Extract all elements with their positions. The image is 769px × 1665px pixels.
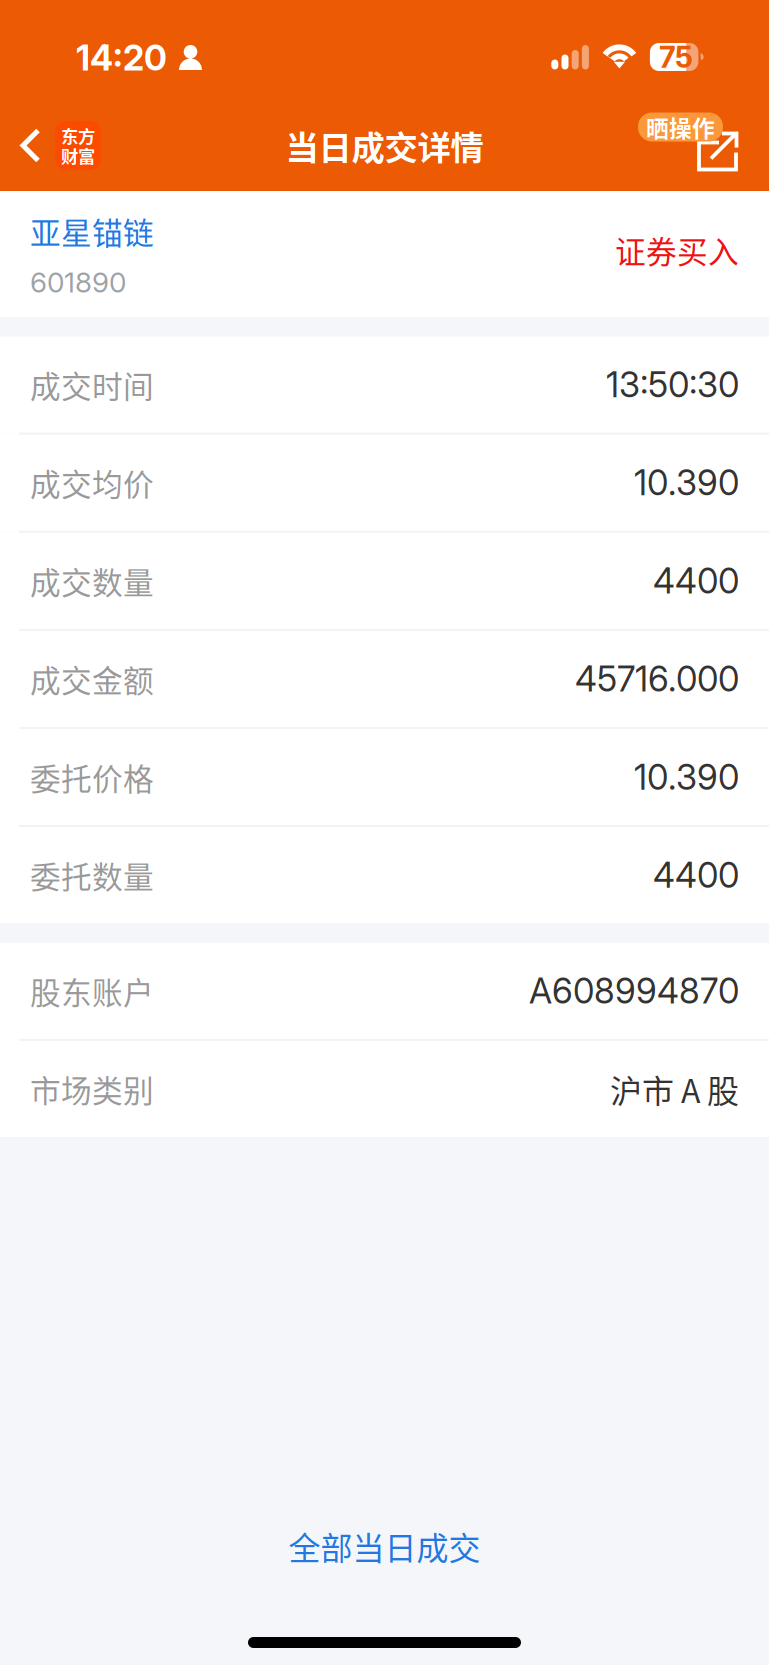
button[interactable]: 亚星锚链 bbox=[0, 191, 769, 317]
staticText: 4400 bbox=[653, 854, 739, 896]
staticText: A608994870 bbox=[529, 970, 739, 1012]
staticText: 4400 bbox=[653, 560, 739, 602]
staticText: 财富 bbox=[61, 143, 95, 168]
staticText: 亚星锚链 bbox=[30, 209, 154, 253]
staticText: 委托价格 bbox=[30, 755, 154, 799]
staticText: 成交时间 bbox=[30, 362, 154, 407]
staticText: 成交金额 bbox=[30, 657, 154, 701]
button[interactable]: Share bbox=[638, 110, 769, 180]
button[interactable]: Back bbox=[0, 99, 113, 191]
staticText: 601890 bbox=[30, 265, 126, 299]
staticText: 证券买入 bbox=[615, 228, 739, 272]
staticText: 14:20 bbox=[76, 37, 167, 79]
staticText: 10.390 bbox=[634, 462, 739, 504]
staticText: 10.390 bbox=[634, 756, 739, 798]
staticText: 成交均价 bbox=[30, 460, 154, 505]
staticText: 晒操作 bbox=[646, 111, 715, 143]
staticText: 45716.000 bbox=[575, 658, 739, 700]
staticText: 市场类别 bbox=[30, 1067, 154, 1111]
staticText: 成交数量 bbox=[30, 559, 154, 603]
button[interactable]: 全部当日成交 bbox=[0, 1510, 769, 1582]
staticText: 股东账户 bbox=[30, 969, 154, 1013]
staticText: 东方 bbox=[61, 123, 95, 148]
staticText: 全部当日成交 bbox=[288, 1523, 480, 1569]
staticText: 当日成交详情 bbox=[285, 121, 483, 170]
staticText: 75 bbox=[659, 39, 693, 75]
staticText: 13:50:30 bbox=[606, 364, 739, 406]
staticText: 委托数量 bbox=[30, 853, 154, 897]
staticText: 沪市 A 股 bbox=[610, 1066, 739, 1112]
